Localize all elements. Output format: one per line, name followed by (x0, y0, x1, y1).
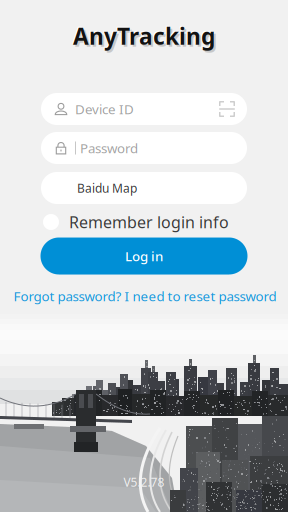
staticText: Log in (125, 247, 163, 265)
button[interactable]: Remember login info (43, 211, 247, 233)
staticText: Remember login info (69, 211, 229, 233)
button[interactable]: Forgot password? I need to reset passwor… (13, 287, 276, 305)
staticText: AnyTracking (72, 20, 214, 50)
staticText: V5.2.78 (123, 474, 164, 490)
button[interactable]: Baidu Map (41, 172, 247, 204)
staticText: Baidu Map (77, 180, 137, 196)
button[interactable]: Device ID (41, 93, 247, 125)
staticText: Device ID (75, 100, 134, 118)
button[interactable]: Log in (40, 237, 247, 274)
staticText: AnyTracking (75, 23, 217, 53)
button[interactable]: Password (41, 132, 247, 164)
staticText: Password (80, 139, 138, 157)
staticText: AnyTracking (73, 21, 215, 51)
staticText: Forgot password? I need to reset passwor… (13, 287, 276, 305)
